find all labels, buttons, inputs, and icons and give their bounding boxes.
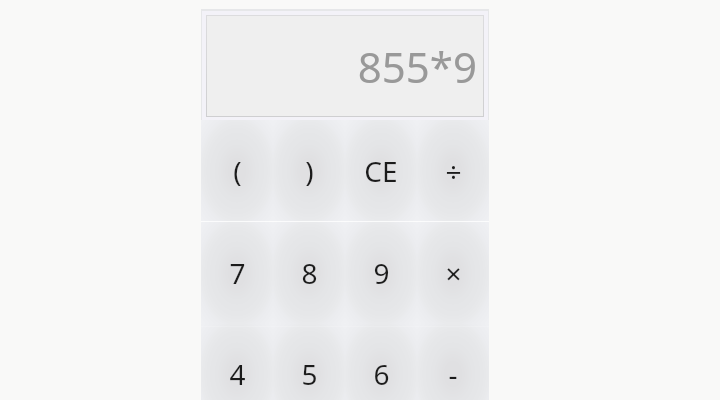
button[interactable]: 8 <box>273 222 345 324</box>
button[interactable]: CE <box>345 120 417 222</box>
staticText: 9 <box>373 254 390 292</box>
button[interactable]: 5 <box>273 323 345 400</box>
button[interactable]: ( <box>201 120 273 222</box>
button[interactable]: × <box>417 222 489 324</box>
button[interactable]: 9 <box>345 222 417 324</box>
button[interactable]: 6 <box>345 323 417 400</box>
staticText: 6 <box>373 355 390 393</box>
staticText: × <box>445 254 462 292</box>
staticText: 7 <box>229 254 246 292</box>
button[interactable]: 7 <box>201 222 273 324</box>
staticText: 8 <box>301 254 318 292</box>
staticText: - <box>448 355 458 393</box>
staticText: 4 <box>229 355 246 393</box>
button[interactable]: - <box>417 323 489 400</box>
staticText: ) <box>305 152 314 190</box>
button[interactable]: ÷ <box>417 120 489 222</box>
staticText: ( <box>233 152 242 190</box>
staticText: 5 <box>301 355 318 393</box>
staticText: 855*9 <box>357 38 477 95</box>
button[interactable]: 4 <box>201 323 273 400</box>
button[interactable]: ) <box>273 120 345 222</box>
staticText: CE <box>364 152 398 190</box>
staticText: ÷ <box>445 152 462 190</box>
